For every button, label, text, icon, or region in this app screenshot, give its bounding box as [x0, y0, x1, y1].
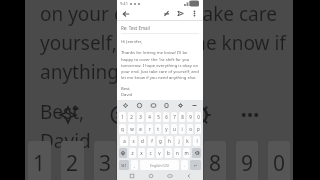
- button[interactable]: Send: [175, 8, 186, 19]
- staticText: u: [173, 126, 176, 132]
- staticText: m: [184, 150, 189, 156]
- staticText: 9:41: [120, 1, 128, 6]
- button[interactable]: Keyboard settings: [176, 101, 185, 110]
- button[interactable]: Back: [120, 8, 131, 19]
- button[interactable]: Collapse: [190, 101, 199, 110]
- staticText: p: [197, 126, 200, 132]
- staticText: w: [130, 126, 134, 132]
- button[interactable]: o: [187, 124, 193, 134]
- button[interactable]: h: [166, 136, 173, 146]
- button[interactable]: Backspace: [192, 148, 201, 158]
- button[interactable]: a: [120, 136, 128, 146]
- button[interactable]: f: [148, 136, 155, 146]
- button[interactable]: GIF: [149, 101, 158, 110]
- button[interactable]: Stickers: [121, 101, 130, 110]
- button[interactable]: l: [193, 136, 200, 146]
- staticText: David: [40, 128, 91, 154]
- button[interactable]: !#1: [119, 160, 129, 170]
- button[interactable]: b: [165, 148, 172, 158]
- button[interactable]: Recents: [127, 171, 136, 180]
- staticText: English (US): [150, 163, 169, 168]
- button[interactable]: c: [147, 148, 154, 158]
- button[interactable]: x: [138, 148, 145, 158]
- button[interactable]: ↵: [190, 160, 201, 170]
- button[interactable]: y: [163, 124, 169, 134]
- staticText: 8: [181, 114, 184, 120]
- button[interactable]: Keyboard settings: [186, 102, 212, 128]
- button[interactable]: t: [155, 124, 161, 134]
- button[interactable]: More options: [189, 8, 200, 19]
- staticText: d: [141, 138, 144, 144]
- staticText: yourself, and let me know if you need: [40, 30, 293, 56]
- staticText: g: [159, 138, 162, 144]
- button[interactable]: w: [128, 124, 135, 134]
- button[interactable]: Shift: [119, 148, 127, 158]
- button[interactable]: e: [137, 124, 144, 134]
- button[interactable]: Home: [146, 171, 155, 180]
- button[interactable]: Emoji: [107, 102, 133, 128]
- button[interactable]: 8: [179, 112, 185, 122]
- staticText: t: [157, 126, 159, 132]
- button[interactable]: u: [171, 124, 177, 134]
- staticText: b: [167, 150, 170, 156]
- button[interactable]: g: [157, 136, 164, 146]
- staticText: o: [189, 126, 192, 132]
- button[interactable]: s: [130, 136, 137, 146]
- staticText: Re: Test Email: [121, 25, 150, 31]
- button[interactable]: 8: [204, 141, 226, 180]
- staticText: !#1: [121, 163, 127, 168]
- staticText: f: [151, 138, 153, 144]
- button[interactable]: d: [139, 136, 146, 146]
- button[interactable]: .: [181, 160, 188, 170]
- staticText: 4: [148, 114, 151, 120]
- button[interactable]: 1: [119, 112, 126, 122]
- button[interactable]: Stickers: [55, 102, 81, 128]
- button[interactable]: r: [146, 124, 153, 134]
- staticText: a: [123, 138, 126, 144]
- button[interactable]: Keyboard: [165, 171, 174, 180]
- button[interactable]: ,: [131, 160, 138, 170]
- button[interactable]: j: [175, 136, 182, 146]
- button[interactable]: Clipboard: [162, 101, 171, 110]
- staticText: .: [184, 163, 186, 168]
- button[interactable]: q: [119, 124, 126, 134]
- button[interactable]: Emoji: [135, 101, 144, 110]
- button[interactable]: Space: [140, 160, 179, 170]
- staticText: on your end, just take care of: [40, 1, 293, 27]
- button[interactable]: n: [174, 148, 181, 158]
- staticText: x: [140, 150, 143, 156]
- staticText: c: [149, 150, 152, 156]
- button[interactable]: m: [183, 148, 190, 158]
- staticText: y: [165, 126, 168, 132]
- staticText: j: [178, 138, 180, 144]
- button[interactable]: 2: [61, 141, 84, 180]
- button[interactable]: i: [179, 124, 185, 134]
- button[interactable]: 3: [137, 112, 144, 122]
- button[interactable]: Attach: [161, 8, 172, 19]
- staticText: h: [168, 138, 171, 144]
- staticText: 9: [241, 149, 254, 178]
- staticText: Thanks for letting me know! I'll be happ…: [121, 50, 199, 80]
- button[interactable]: 6: [163, 112, 169, 122]
- button[interactable]: 0: [195, 112, 201, 122]
- staticText: Best,: [40, 99, 85, 125]
- staticText: anything else.: [40, 59, 165, 85]
- button[interactable]: 0: [268, 141, 290, 180]
- button[interactable]: 9: [236, 141, 258, 180]
- button[interactable]: Back: [184, 171, 193, 180]
- button[interactable]: 2: [128, 112, 135, 122]
- button[interactable]: 1: [28, 141, 51, 180]
- button[interactable]: 3: [94, 141, 116, 180]
- staticText: Hi Jennifer,: [121, 39, 143, 45]
- button[interactable]: 4: [146, 112, 153, 122]
- staticText: z: [131, 150, 134, 156]
- button[interactable]: v: [156, 148, 163, 158]
- button[interactable]: More options: [237, 102, 263, 128]
- button[interactable]: 5: [155, 112, 161, 122]
- button[interactable]: k: [184, 136, 191, 146]
- button[interactable]: 9: [187, 112, 193, 122]
- button[interactable]: p: [195, 124, 201, 134]
- button[interactable]: z: [129, 148, 136, 158]
- staticText: 8: [209, 149, 222, 178]
- button[interactable]: 7: [171, 112, 177, 122]
